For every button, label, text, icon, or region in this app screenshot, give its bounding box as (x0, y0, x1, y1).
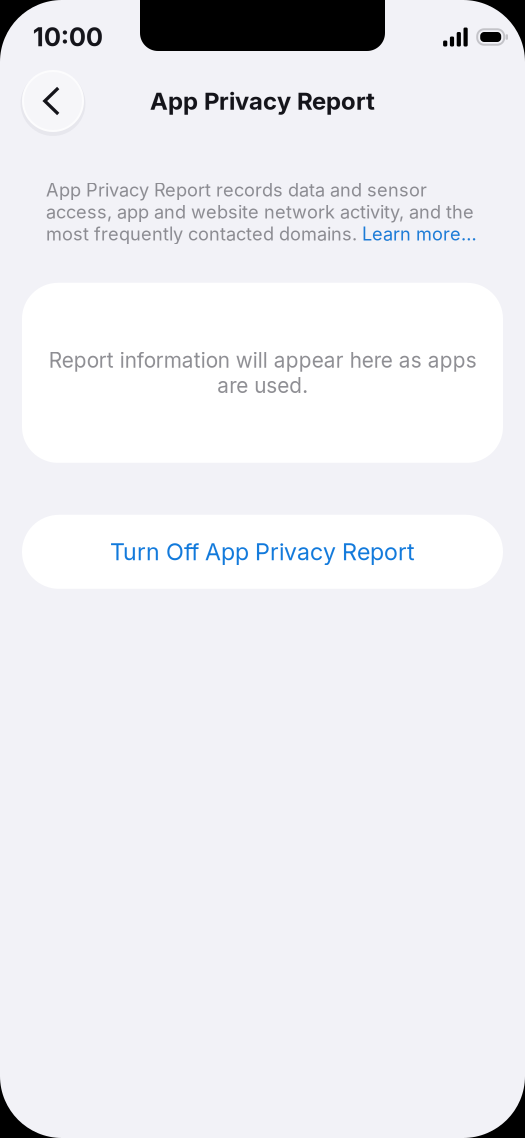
staticText: Turn Off App Privacy Report (110, 538, 415, 566)
staticText: 10:00 (33, 22, 103, 52)
staticText: App Privacy Report records data and sens… (46, 179, 477, 245)
button[interactable]: Back (22, 70, 84, 132)
staticText: App Privacy Report (150, 86, 375, 115)
button[interactable]: Turn Off App Privacy Report (0, 515, 525, 589)
staticText: Report information will appear here as a… (48, 348, 476, 398)
